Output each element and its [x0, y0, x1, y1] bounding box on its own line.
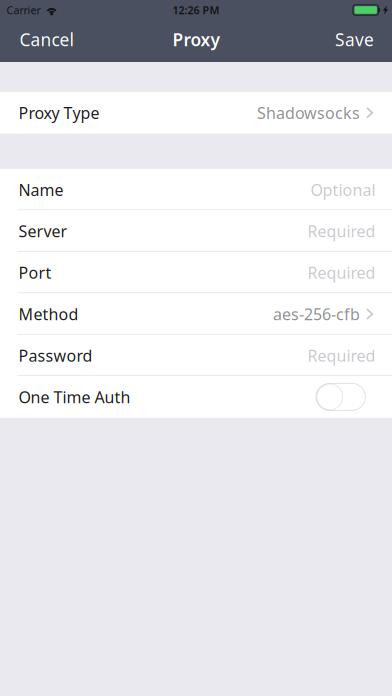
staticText: One Time Auth: [19, 386, 131, 407]
staticText: Required: [307, 345, 375, 366]
button[interactable]: Proxy Type: [0, 92, 392, 133]
staticText: Required: [307, 262, 375, 283]
staticText: 12:26 PM: [172, 3, 219, 17]
button[interactable]: One Time Auth: [316, 383, 365, 410]
staticText: Carrier: [6, 3, 40, 17]
staticText: Server: [19, 220, 68, 242]
staticText: Save: [335, 28, 374, 51]
staticText: Cancel: [19, 28, 73, 51]
staticText: Proxy: [172, 28, 219, 51]
staticText: Required: [307, 220, 375, 242]
staticText: Shadowsocks: [257, 102, 360, 123]
staticText: Password: [19, 345, 93, 366]
staticText: aes-256-cfb: [273, 303, 360, 325]
button[interactable]: Cancel: [0, 20, 87, 62]
staticText: Proxy Type: [19, 102, 100, 123]
staticText: Optional: [310, 179, 375, 200]
button[interactable]: Save: [321, 20, 392, 62]
staticText: Port: [19, 262, 52, 283]
button[interactable]: Method: [0, 293, 392, 335]
staticText: Method: [19, 303, 79, 325]
staticText: Name: [19, 179, 64, 200]
